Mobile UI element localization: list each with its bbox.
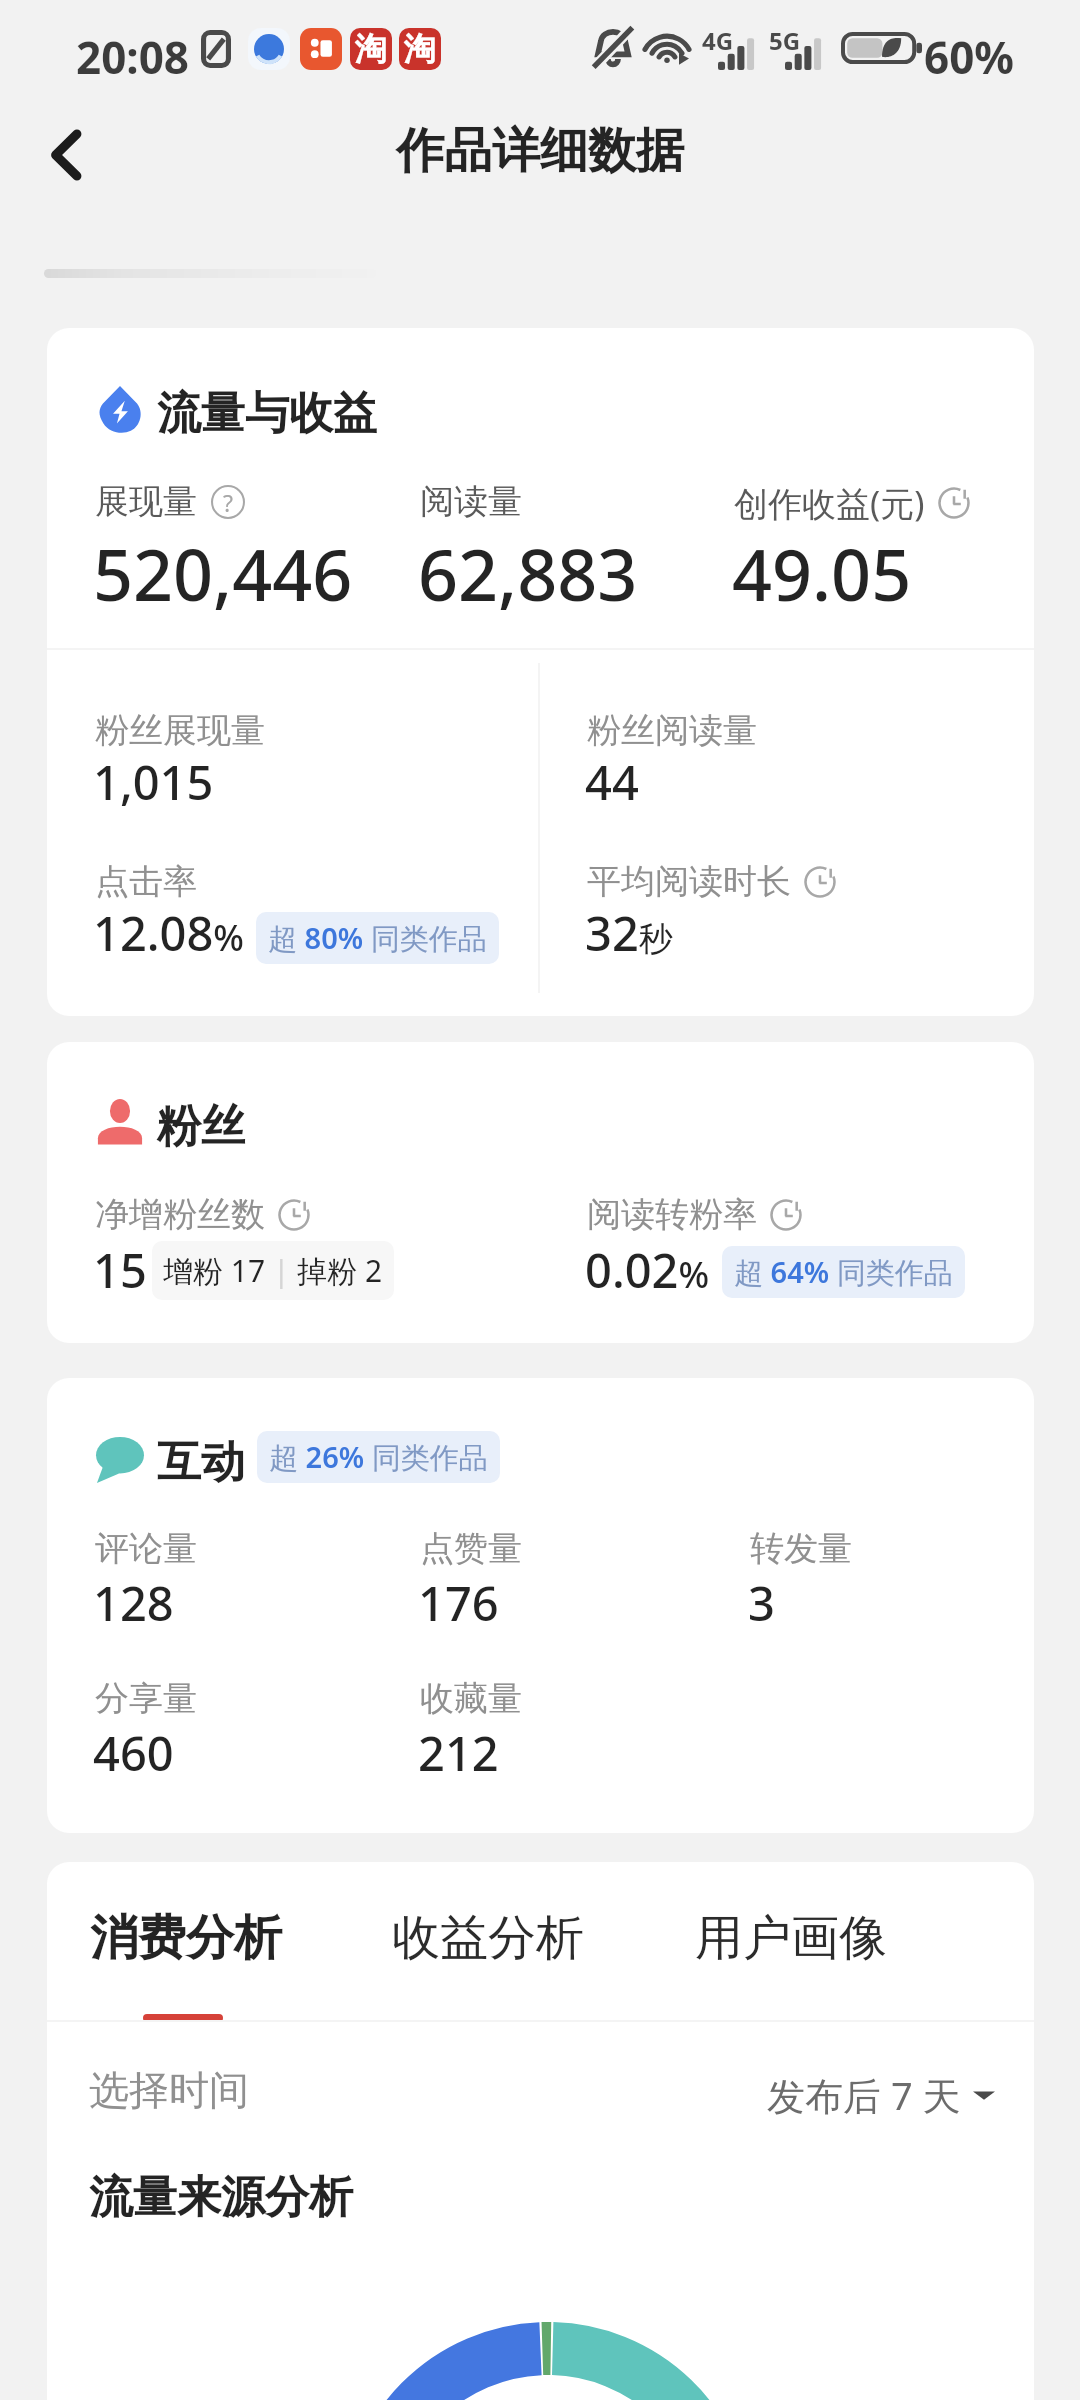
staticText: 520,446 bbox=[93, 526, 353, 621]
staticText: 0.02% bbox=[585, 1238, 710, 1302]
staticText: 作品详细数据 bbox=[396, 121, 684, 181]
button[interactable]: 收益分析 bbox=[384, 1898, 592, 1978]
staticText: 32秒 bbox=[585, 901, 673, 965]
staticText: 淘 bbox=[404, 29, 436, 69]
staticText: 分享量 bbox=[95, 1677, 197, 1720]
staticText: 49.05 bbox=[732, 526, 912, 621]
staticText: 超 64% 同类作品 bbox=[734, 1252, 953, 1292]
staticText: 超 80% 同类作品 bbox=[268, 918, 487, 958]
staticText: 发布后 7 天 bbox=[767, 2069, 961, 2121]
staticText: 12.08% bbox=[93, 901, 244, 965]
staticText: 460 bbox=[93, 1721, 174, 1785]
staticText: 点击率 bbox=[95, 860, 197, 903]
staticText: 阅读转粉率 bbox=[587, 1193, 757, 1236]
staticText: 淘 bbox=[355, 29, 387, 69]
staticText: 阅读量 bbox=[420, 480, 522, 523]
staticText: 净增粉丝数 bbox=[95, 1193, 265, 1236]
staticText: 20:08 bbox=[76, 27, 190, 87]
staticText: 176 bbox=[418, 1571, 499, 1635]
staticText: 消费分析 bbox=[90, 1908, 282, 1968]
staticText: 平均阅读时长 bbox=[587, 860, 791, 903]
staticText: 粉丝阅读量 bbox=[587, 709, 757, 752]
staticText: 1,015 bbox=[93, 750, 214, 814]
staticText: 流量来源分析 bbox=[89, 2170, 353, 2225]
staticText: 互动 bbox=[157, 1435, 245, 1490]
staticText: 粉丝展现量 bbox=[95, 709, 265, 752]
staticText: 收藏量 bbox=[420, 1677, 522, 1720]
staticText: 用户画像 bbox=[695, 1908, 887, 1968]
staticText: 收益分析 bbox=[392, 1908, 584, 1968]
button[interactable]: 消费分析 bbox=[82, 1898, 290, 1978]
staticText: 5G bbox=[769, 24, 801, 57]
button[interactable]: 发布后 7 天 bbox=[767, 2069, 995, 2121]
staticText: 超 26% 同类作品 bbox=[269, 1437, 488, 1477]
staticText: 粉丝 bbox=[157, 1099, 245, 1154]
staticText: 评论量 bbox=[95, 1527, 197, 1570]
staticText: 62,883 bbox=[418, 526, 638, 621]
staticText: 创作收益(元) bbox=[734, 480, 925, 526]
staticText: 128 bbox=[93, 1571, 174, 1635]
staticText: 选择时间 bbox=[89, 2065, 249, 2115]
staticText: 15 bbox=[93, 1238, 147, 1302]
staticText: ? bbox=[223, 487, 234, 518]
staticText: 转发量 bbox=[750, 1527, 852, 1570]
staticText: 4G bbox=[702, 24, 734, 57]
staticText: 点赞量 bbox=[420, 1527, 522, 1570]
staticText: 60% bbox=[924, 27, 1015, 87]
staticText: 增粉 17 | 掉粉 2 bbox=[163, 1250, 383, 1291]
staticText: 3 bbox=[748, 1571, 775, 1635]
staticText: 212 bbox=[418, 1721, 499, 1785]
staticText: 流量与收益 bbox=[157, 386, 377, 441]
button[interactable]: 用户画像 bbox=[687, 1898, 895, 1978]
button[interactable]: Back bbox=[26, 109, 110, 193]
staticText: 44 bbox=[585, 750, 639, 814]
staticText: 展现量 bbox=[95, 480, 197, 523]
